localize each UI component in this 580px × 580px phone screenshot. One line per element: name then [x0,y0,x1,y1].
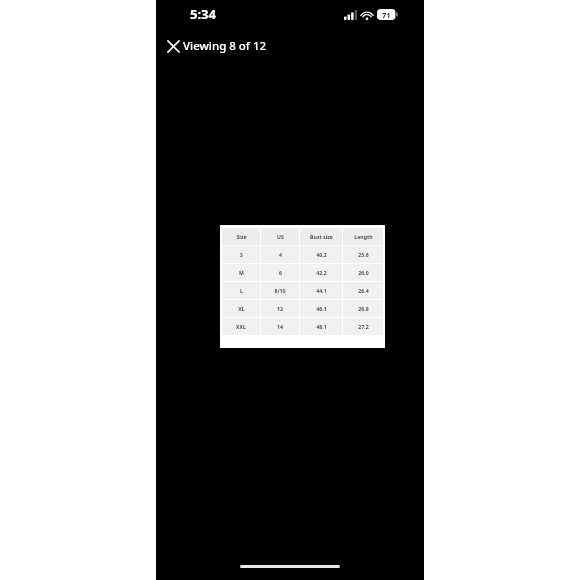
staticText: US [277,233,284,240]
button[interactable]: Close [160,33,186,59]
staticText: 71 [382,10,391,20]
staticText: 26.0 [358,269,369,276]
staticText: 8/10 [274,287,286,294]
staticText: 12 [277,305,283,312]
staticText: 48.1 [316,323,327,330]
staticText: 46.1 [316,305,327,312]
staticText: Length [354,233,373,240]
staticText: 5:34 [190,5,216,23]
staticText: M [239,269,244,276]
staticText: 40.2 [316,251,327,258]
staticText: 25.6 [358,251,369,258]
staticText: S [240,251,243,258]
staticText: 14 [277,323,283,330]
button[interactable]: Size [220,225,385,348]
staticText: Viewing 8 of 12 [183,38,267,54]
staticText: XL [238,305,245,312]
staticText: 26.8 [358,305,369,312]
staticText: XXL [236,323,246,330]
staticText: 42.2 [316,269,327,276]
staticText: 44.1 [316,287,327,294]
staticText: 6 [279,269,282,276]
staticText: Size [236,233,247,240]
staticText: Bust size [310,233,333,240]
staticText: L [240,287,243,294]
staticText: 27.2 [358,323,369,330]
staticText: 4 [279,251,282,258]
staticText: 26.4 [358,287,369,294]
